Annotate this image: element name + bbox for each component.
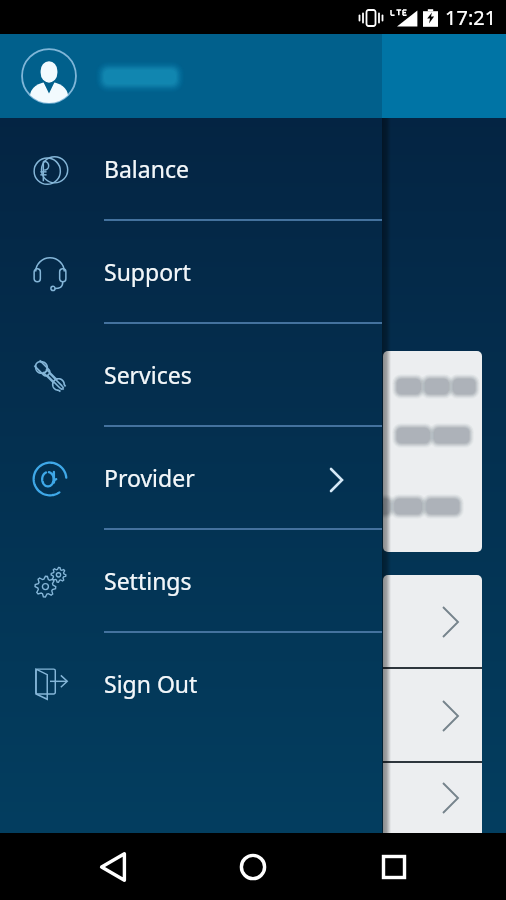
staticText: 17:21 — [445, 4, 497, 31]
staticText: Provider — [104, 462, 195, 493]
button[interactable]: Sign Out — [0, 633, 382, 736]
button[interactable]: Support — [0, 221, 382, 324]
button[interactable] — [383, 763, 482, 833]
staticText: Services — [104, 359, 192, 390]
button[interactable]: Provider — [0, 427, 382, 530]
button[interactable] — [383, 669, 482, 763]
staticText: Balance — [104, 153, 189, 184]
button[interactable] — [383, 351, 482, 552]
button[interactable]: Home — [213, 833, 293, 900]
button[interactable]: Recent apps — [354, 833, 434, 900]
staticText: Settings — [104, 565, 192, 596]
button[interactable]: Balance — [0, 118, 382, 221]
staticText: Support — [104, 256, 191, 287]
button[interactable] — [0, 34, 382, 118]
button[interactable]: Back — [73, 833, 153, 900]
button[interactable]: Settings — [0, 530, 382, 633]
button[interactable]: Services — [0, 324, 382, 427]
button[interactable] — [383, 575, 482, 669]
staticText: Sign Out — [104, 668, 198, 699]
